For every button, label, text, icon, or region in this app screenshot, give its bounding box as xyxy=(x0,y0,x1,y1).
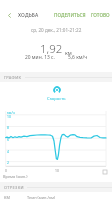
staticText: ср, 20 дек., 21:01-21:22 xyxy=(31,27,82,33)
staticText: ГРАФИК xyxy=(4,75,22,80)
staticText: Скорость xyxy=(47,96,66,102)
other: Скорость xyxy=(53,86,61,94)
staticText: км xyxy=(65,49,72,56)
button[interactable]: Скорость xyxy=(40,84,73,104)
staticText: ГОТОВО xyxy=(91,12,110,18)
button[interactable]: ПОДЕЛИТЬСЯ xyxy=(53,9,87,21)
staticText: ОТРЕЗКИ xyxy=(4,185,24,190)
staticText: 2 xyxy=(7,160,9,165)
staticText: 10 xyxy=(55,168,59,173)
button[interactable]: Назад xyxy=(0,9,18,21)
staticText: 0 xyxy=(5,168,7,173)
button[interactable]: ГОТОВО xyxy=(87,9,112,21)
staticText: ПОДЕЛИТЬСЯ xyxy=(54,12,86,18)
button[interactable]: Развернуть график xyxy=(101,168,108,175)
staticText: 5,6 км/ч xyxy=(68,54,88,61)
staticText: 8 xyxy=(7,125,9,130)
staticText: 20 мин. 13 с. xyxy=(25,54,55,61)
staticText: 4 xyxy=(7,149,9,154)
staticText: Время (мин.) xyxy=(3,174,28,179)
staticText: 10 xyxy=(7,114,11,119)
staticText: 6 xyxy=(7,137,9,142)
staticText: Темп (мин./км) xyxy=(27,195,56,200)
staticText: км/ч xyxy=(7,110,15,115)
staticText: КМ xyxy=(4,195,10,200)
staticText: ХОДЬБА xyxy=(18,12,39,19)
staticText: 1,92 xyxy=(40,41,63,57)
